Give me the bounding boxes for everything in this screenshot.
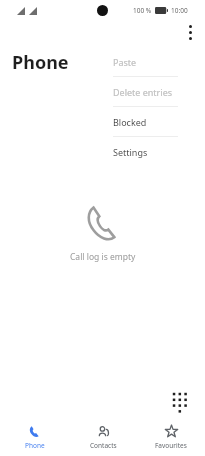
button[interactable]: Delete entries <box>103 77 188 106</box>
button[interactable]: Contacts <box>69 420 137 456</box>
staticText: Call log is empty <box>70 251 136 263</box>
staticText: 100 % <box>133 6 152 15</box>
staticText: Settings <box>113 146 148 158</box>
button[interactable]: Settings <box>103 137 188 166</box>
staticText: Paste <box>113 56 137 68</box>
button[interactable]: Dialpad <box>161 381 194 414</box>
button[interactable]: More options <box>180 22 200 43</box>
button[interactable]: Blocked <box>103 107 188 136</box>
staticText: Contacts <box>90 441 117 450</box>
staticText: Phone <box>12 50 69 75</box>
button[interactable]: Paste <box>103 47 188 76</box>
button[interactable]: Phone <box>0 420 69 456</box>
staticText: Favourites <box>155 441 187 450</box>
button[interactable]: Favourites <box>137 420 205 456</box>
staticText: Delete entries <box>113 86 173 98</box>
staticText: Phone <box>25 441 45 450</box>
staticText: 10:00 <box>171 6 188 15</box>
staticText: Blocked <box>113 116 147 128</box>
